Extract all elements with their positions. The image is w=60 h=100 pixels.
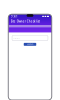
staticText: Enter item [13, 37, 19, 39]
staticText: Site Owner Checklist [11, 20, 40, 23]
button[interactable]: Add item [24, 43, 36, 46]
staticText: Add item [27, 43, 33, 45]
staticText: 9:41 [11, 15, 18, 18]
